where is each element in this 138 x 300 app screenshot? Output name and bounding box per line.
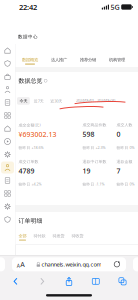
- button[interactable]: Tabs: [112, 274, 133, 288]
- button[interactable]: 数据概览: [15, 44, 44, 66]
- staticText: 近30天: [50, 98, 62, 104]
- staticText: 成交订单数: [18, 159, 38, 164]
- button[interactable]: Sidebar item: [0, 200, 15, 213]
- button[interactable]: 待收货: [71, 233, 83, 240]
- staticText: 机构管理: [109, 57, 125, 62]
- staticText: 数据总览: [18, 77, 42, 84]
- button[interactable]: 今天: [17, 97, 30, 105]
- button[interactable]: Sidebar item: [0, 96, 15, 109]
- staticText: 今天: [19, 98, 27, 103]
- staticText: 退款中订单数: [82, 159, 106, 164]
- staticText: 退款金额: [116, 159, 132, 164]
- staticText: 较昨日 +4.2%: [18, 181, 41, 187]
- staticText: 19: [82, 166, 90, 175]
- staticText: 成交商品件数: [82, 123, 106, 127]
- button[interactable]: 近7天: [31, 97, 46, 105]
- button[interactable]: Reload: [109, 257, 125, 271]
- staticText: ¥693002.13: [18, 130, 56, 139]
- staticText: 待付款: [33, 233, 45, 239]
- button[interactable]: 待付款: [33, 233, 45, 240]
- button[interactable]: 机构管理: [102, 44, 131, 66]
- button[interactable]: Sidebar item: [0, 109, 15, 122]
- staticText: 5G: [111, 2, 120, 12]
- button[interactable]: Sidebar item: [0, 148, 15, 161]
- button[interactable]: Sidebar item: [0, 213, 15, 226]
- staticText: 7: [116, 166, 120, 175]
- staticText: 成交金额(元): [18, 122, 40, 128]
- button[interactable]: 全部: [18, 233, 26, 240]
- staticText: 0: [116, 129, 120, 139]
- button[interactable]: Sidebar item: [0, 122, 15, 135]
- button[interactable]: 推荐分销: [73, 44, 102, 66]
- staticText: 全部: [18, 233, 26, 239]
- staticText: channels.weixin.qq.com: [41, 260, 101, 268]
- staticText: 22:42: [19, 2, 37, 12]
- staticText: 较昨日 +2.3%: [82, 145, 105, 150]
- button[interactable]: Sidebar item: [0, 161, 15, 174]
- staticText: 达人推广: [51, 57, 67, 62]
- staticText: A: [17, 262, 20, 269]
- button[interactable]: Forward: [32, 274, 53, 288]
- button[interactable]: Bookmarks: [85, 274, 106, 288]
- button[interactable]: Back: [5, 274, 26, 288]
- staticText: A: [20, 260, 25, 269]
- button[interactable]: 近30天: [48, 97, 65, 105]
- staticText: 待发货: [52, 233, 64, 239]
- button[interactable]: 达人推广: [44, 44, 73, 66]
- button[interactable]: Sidebar item: [0, 83, 15, 96]
- button[interactable]: Sidebar item: [0, 187, 15, 200]
- button[interactable]: Sidebar item: [0, 174, 15, 187]
- button[interactable]: Share: [58, 274, 79, 288]
- staticText: 成交人数: [116, 123, 132, 127]
- staticText: 较昨日 0%: [116, 145, 134, 150]
- staticText: 598: [82, 129, 94, 139]
- button[interactable]: Sidebar item: [0, 70, 15, 83]
- staticText: 订单明细: [18, 217, 42, 224]
- button[interactable]: 待发货: [52, 233, 64, 240]
- button[interactable]: Sidebar item: [0, 135, 15, 148]
- staticText: 4789: [18, 166, 34, 175]
- staticText: 待收货: [71, 233, 83, 239]
- staticText: 近7天: [34, 98, 44, 104]
- staticText: 数据概览: [22, 57, 38, 62]
- staticText: 推荐分销: [80, 57, 96, 62]
- button[interactable]: Sidebar item: [0, 44, 15, 57]
- staticText: 2024/06/01 - 2024/06/30: [76, 97, 115, 103]
- button[interactable]: Page settings: [13, 257, 29, 271]
- staticText: 较昨日 0%: [116, 181, 134, 187]
- staticText: 较昨日 +18.6%: [18, 145, 43, 150]
- staticText: 较昨日 -1.1%: [82, 181, 104, 187]
- button[interactable]: Sidebar item: [0, 57, 15, 70]
- staticText: 数据中心: [18, 34, 38, 40]
